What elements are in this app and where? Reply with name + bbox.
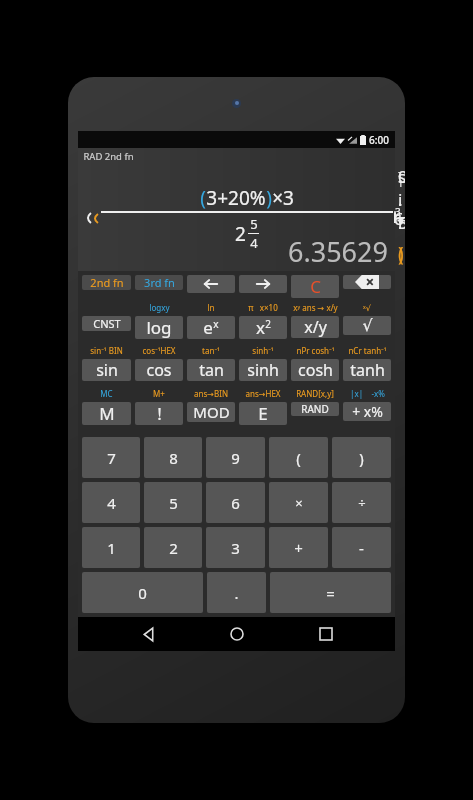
staticText: 4: [250, 234, 258, 252]
staticText: C: [310, 275, 321, 298]
staticText: M: [99, 402, 115, 425]
staticText: xʸ ans → x/y: [293, 302, 338, 313]
staticText: x/y: [304, 316, 327, 338]
button[interactable]: +: [269, 527, 328, 568]
staticText: log: [146, 316, 172, 339]
staticText: ×: [295, 494, 303, 512]
button[interactable]: =: [270, 572, 391, 613]
button[interactable]: ): [332, 437, 391, 478]
staticText: ): [359, 448, 364, 468]
staticText: |x| -x%: [350, 388, 385, 399]
button[interactable]: M: [82, 402, 131, 425]
staticText: MC: [100, 388, 113, 399]
staticText: M+: [153, 388, 165, 399]
button[interactable]: 4: [82, 482, 140, 523]
staticText: sin⁻¹ BIN: [90, 345, 123, 356]
staticText: 3: [231, 538, 240, 558]
staticText: 3+20%: [206, 185, 266, 211]
staticText: ans→HEX: [245, 388, 281, 399]
button[interactable]: 6: [206, 482, 265, 523]
button[interactable]: 3: [206, 527, 265, 568]
staticText: 9: [231, 448, 240, 468]
button[interactable]: 2nd fn: [82, 275, 131, 290]
staticText: nCr tanh⁻¹: [348, 345, 387, 356]
other: Right: [254, 275, 272, 293]
staticText: MOD: [193, 402, 230, 422]
staticText: !: [157, 402, 162, 425]
other: Backspace: [355, 275, 379, 289]
button[interactable]: x: [239, 316, 287, 339]
staticText: √: [362, 316, 373, 335]
button[interactable]: RAND: [291, 402, 339, 416]
button[interactable]: + x%: [343, 402, 391, 421]
button[interactable]: 7: [82, 437, 140, 478]
staticText: 6:00: [369, 133, 389, 147]
staticText: (: [296, 448, 301, 468]
button[interactable]: e: [187, 316, 235, 339]
button[interactable]: Recents: [306, 617, 346, 651]
button[interactable]: Left: [187, 275, 235, 293]
staticText: cos⁻¹HEX: [142, 345, 176, 356]
button[interactable]: (: [269, 437, 328, 478]
button[interactable]: sinh: [239, 359, 287, 381]
button[interactable]: ×: [269, 482, 328, 523]
button[interactable]: 0: [82, 572, 203, 613]
staticText: =: [326, 583, 335, 603]
button[interactable]: tanh: [343, 359, 391, 381]
button[interactable]: Back: [127, 617, 167, 651]
button[interactable]: 2: [144, 527, 202, 568]
staticText: logxy: [149, 302, 170, 313]
staticText: sinh⁻¹: [252, 345, 274, 356]
staticText: -: [359, 538, 364, 558]
button[interactable]: √: [343, 316, 391, 335]
staticText: tan: [199, 359, 224, 381]
button[interactable]: .: [207, 572, 266, 613]
button[interactable]: sin: [82, 359, 131, 381]
button[interactable]: 8: [144, 437, 202, 478]
staticText: π x×10: [248, 302, 278, 313]
staticText: ÷: [358, 494, 366, 512]
button[interactable]: 1: [82, 527, 140, 568]
button[interactable]: cos: [135, 359, 183, 381]
button[interactable]: Backspace: [343, 275, 391, 289]
button[interactable]: 3rd fn: [135, 275, 183, 290]
staticText: 7: [107, 448, 116, 468]
button[interactable]: C: [291, 275, 339, 298]
button[interactable]: cosh: [291, 359, 339, 381]
button[interactable]: CNST: [82, 316, 131, 331]
staticText: 8: [169, 448, 178, 468]
staticText: 2: [169, 538, 178, 558]
staticText: +: [294, 538, 303, 558]
staticText: CNST: [93, 316, 121, 331]
staticText: ln: [207, 302, 215, 313]
staticText: 1: [107, 538, 116, 558]
staticText: RAND: [301, 402, 329, 416]
other: Left: [202, 275, 220, 293]
button[interactable]: x/y: [291, 316, 339, 338]
staticText: tanh: [350, 359, 385, 381]
button[interactable]: tan: [187, 359, 235, 381]
button[interactable]: E: [239, 402, 287, 425]
staticText: ans→BIN: [194, 388, 228, 399]
staticText: 6.35629: [288, 233, 388, 270]
staticText: 2: [235, 221, 246, 247]
button[interactable]: ÷: [332, 482, 391, 523]
staticText: 6: [231, 493, 240, 513]
button[interactable]: 5: [144, 482, 202, 523]
staticText: e: [203, 316, 213, 339]
button[interactable]: Right: [239, 275, 287, 293]
button[interactable]: log: [135, 316, 183, 339]
staticText: RAD 2nd fn: [83, 150, 134, 163]
staticText: 0: [138, 583, 147, 603]
staticText: tan⁻¹: [202, 345, 220, 356]
staticText: .: [234, 583, 239, 603]
button[interactable]: 9: [206, 437, 265, 478]
button[interactable]: !: [135, 402, 183, 425]
button[interactable]: Home: [217, 617, 257, 651]
button[interactable]: MOD: [187, 402, 235, 422]
staticText: sin: [96, 359, 118, 381]
staticText: 4: [107, 493, 116, 513]
staticText: 5: [250, 215, 258, 233]
staticText: ×3: [272, 185, 294, 211]
button[interactable]: -: [332, 527, 391, 568]
